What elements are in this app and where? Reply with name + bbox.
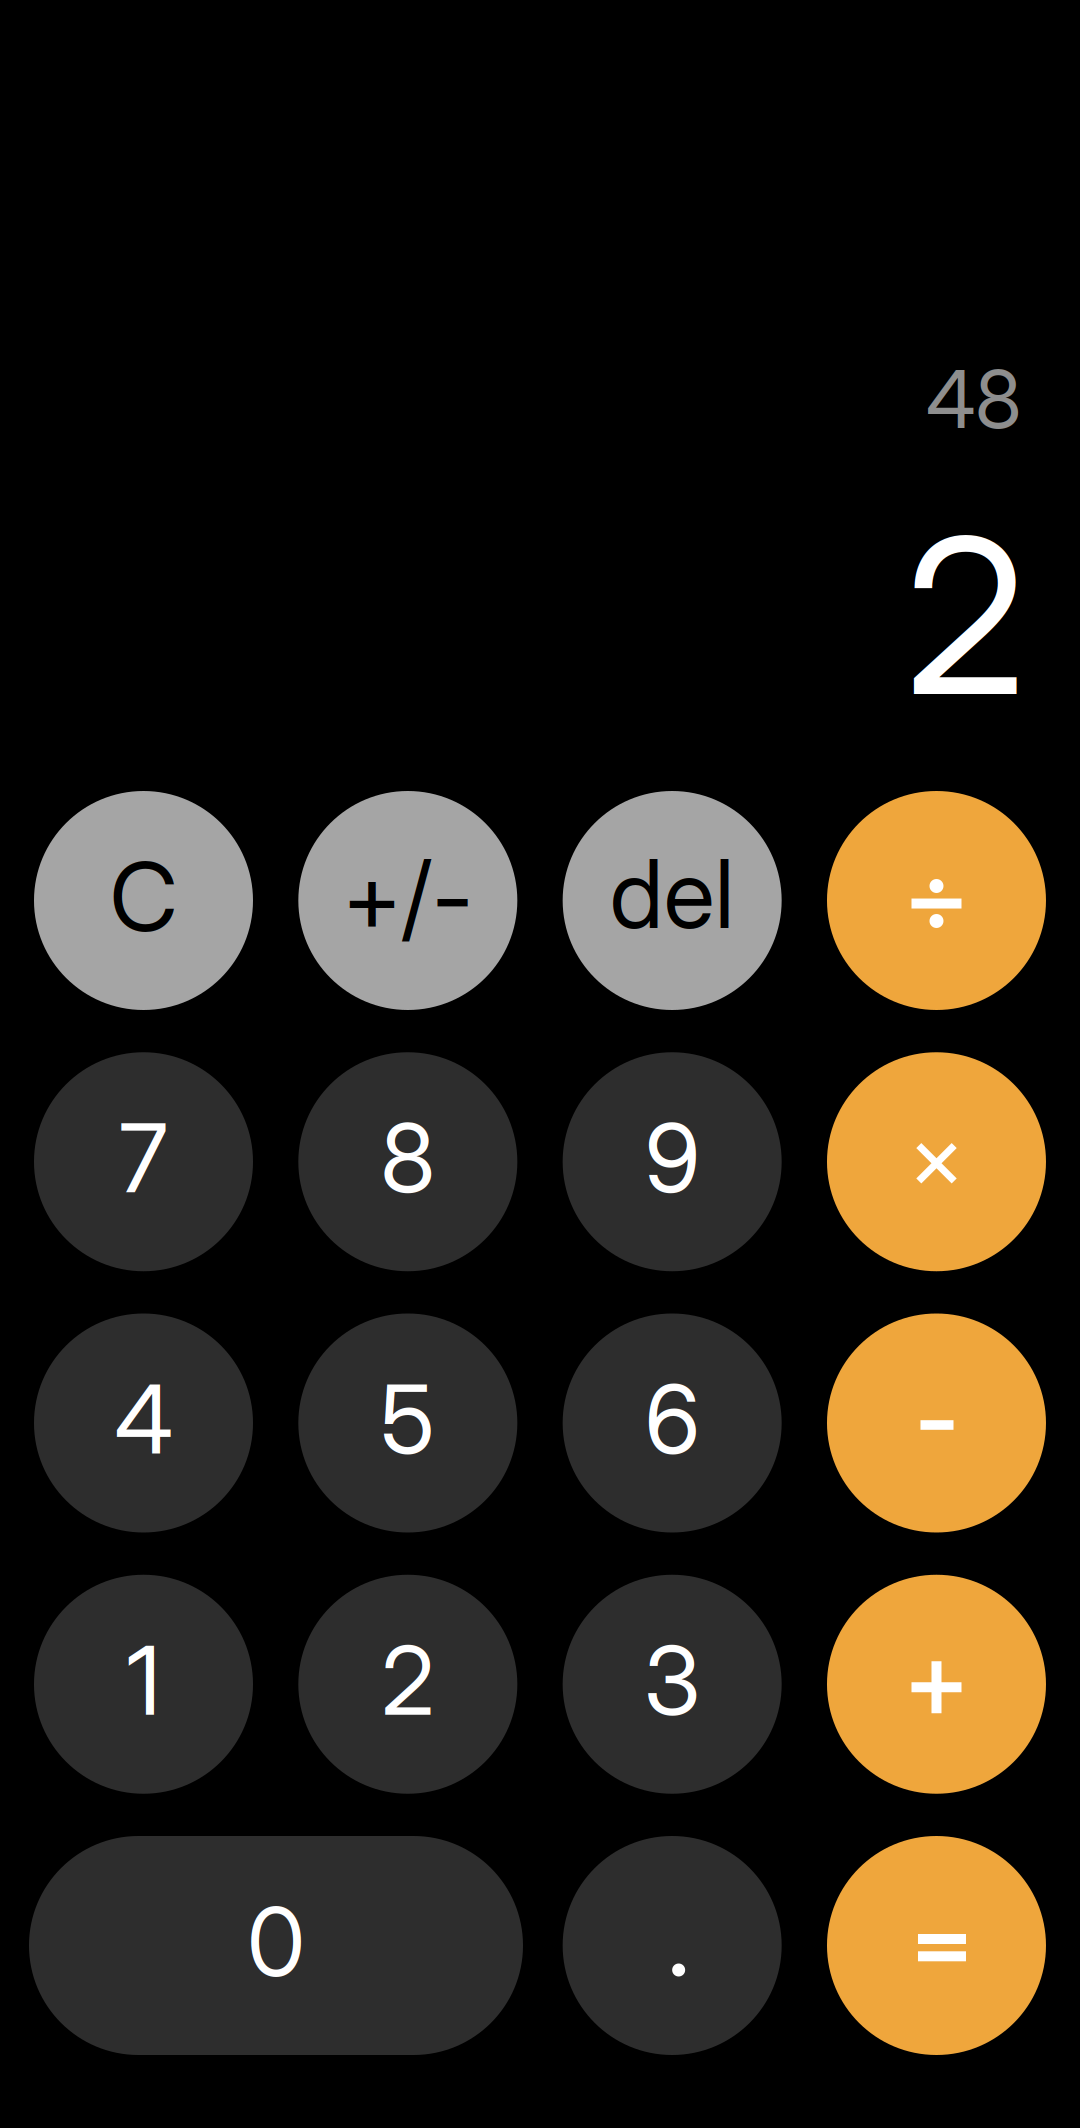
button[interactable]: del: [563, 791, 782, 1010]
staticText: 2: [381, 1623, 434, 1737]
staticText: 6: [645, 1362, 700, 1476]
staticText: C: [109, 839, 177, 954]
button[interactable]: 0: [29, 1836, 523, 2055]
staticText: 9: [645, 1100, 700, 1215]
staticText: 8: [380, 1100, 435, 1215]
button[interactable]: Equals: [827, 1836, 1046, 2055]
button[interactable]: 9: [563, 1052, 782, 1271]
button[interactable]: +/-: [298, 791, 517, 1010]
button[interactable]: 7: [34, 1052, 253, 1271]
staticText: 4: [114, 1362, 172, 1476]
button[interactable]: Decimal point: [563, 1836, 782, 2055]
button[interactable]: 3: [563, 1575, 782, 1794]
staticText: 2: [905, 486, 1025, 746]
button[interactable]: Divide: [827, 791, 1046, 1010]
button[interactable]: 5: [298, 1313, 517, 1532]
button[interactable]: 1: [34, 1575, 253, 1794]
staticText: 5: [380, 1362, 435, 1476]
button[interactable]: Minus: [827, 1313, 1046, 1532]
button[interactable]: 2: [298, 1575, 517, 1794]
button[interactable]: Multiply: [827, 1052, 1046, 1271]
staticText: 48: [926, 351, 1022, 447]
staticText: 7: [119, 1100, 168, 1215]
button[interactable]: Plus: [827, 1575, 1046, 1794]
button[interactable]: C: [34, 791, 253, 1010]
staticText: 1: [126, 1623, 160, 1737]
staticText: +/-: [342, 839, 473, 954]
button[interactable]: 8: [298, 1052, 517, 1271]
staticText: del: [610, 836, 735, 951]
staticText: 3: [644, 1623, 701, 1737]
button[interactable]: 6: [563, 1313, 782, 1532]
staticText: 0: [247, 1884, 305, 1999]
button[interactable]: 4: [34, 1313, 253, 1532]
